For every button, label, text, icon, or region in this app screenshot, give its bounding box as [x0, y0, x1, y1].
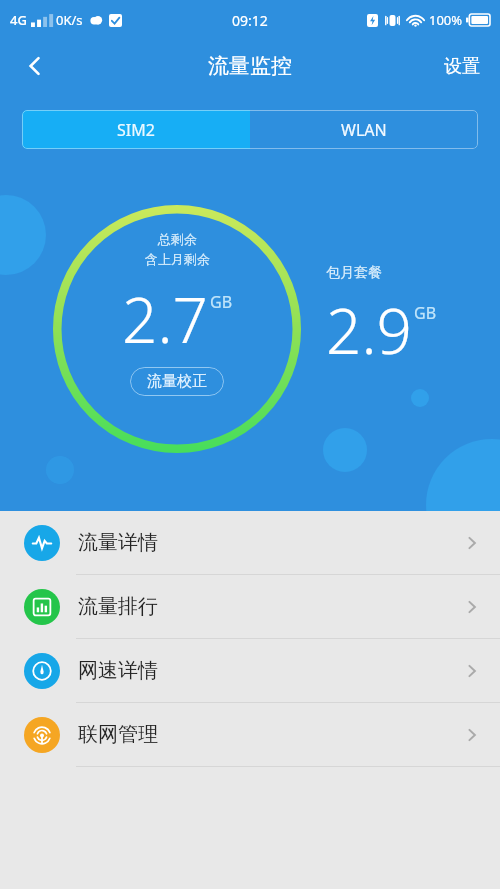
button[interactable]: 设置 [438, 47, 486, 86]
button[interactable]: SIM2 [22, 110, 250, 149]
button[interactable]: 网速详情 [0, 639, 500, 702]
staticText: 联网管理 [78, 722, 158, 747]
button[interactable]: WLAN [250, 110, 478, 149]
staticText: 2.7 [122, 277, 208, 361]
staticText: 0K/s [56, 11, 83, 29]
button[interactable]: Back [8, 40, 62, 92]
staticText: 流量校正 [147, 372, 207, 391]
staticText: 包月套餐 [326, 264, 382, 282]
staticText: 流量监控 [208, 53, 292, 79]
staticText: 流量排行 [78, 594, 158, 619]
button[interactable]: 流量排行 [0, 575, 500, 638]
staticText: 4G [10, 11, 27, 29]
staticText: 总剩余 [158, 231, 197, 247]
staticText: 09:12 [232, 11, 268, 30]
staticText: 2.9 [326, 288, 412, 372]
button[interactable]: 流量详情 [0, 511, 500, 574]
staticText: GB [210, 291, 233, 313]
button[interactable]: 流量校正 [130, 367, 224, 396]
staticText: 含上月剩余 [145, 251, 210, 267]
staticText: 流量详情 [78, 530, 158, 555]
staticText: 设置 [444, 55, 480, 78]
staticText: WLAN [341, 119, 387, 141]
staticText: SIM2 [117, 119, 155, 141]
staticText: 100% [429, 11, 463, 29]
button[interactable]: 联网管理 [0, 703, 500, 766]
staticText: GB [414, 302, 437, 324]
staticText: 网速详情 [78, 658, 158, 683]
